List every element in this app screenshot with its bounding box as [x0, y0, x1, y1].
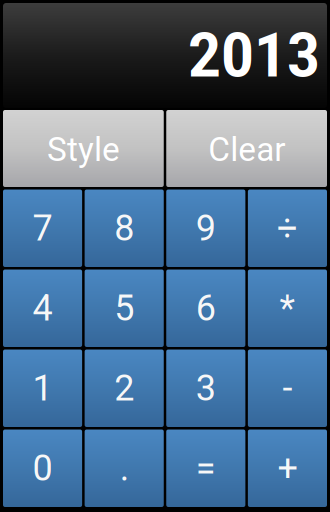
staticText: Clear — [208, 130, 285, 169]
button[interactable]: 8 — [85, 189, 164, 267]
staticText: 1 — [33, 367, 53, 409]
staticText: 3 — [196, 367, 216, 409]
staticText: ÷ — [277, 207, 298, 249]
button[interactable]: 2 — [85, 349, 164, 427]
staticText: 2 — [114, 367, 134, 409]
staticText: 0 — [33, 447, 53, 489]
staticText: = — [196, 447, 216, 489]
button[interactable]: * — [248, 269, 327, 347]
staticText: 6 — [196, 287, 216, 329]
button[interactable]: + — [248, 429, 327, 507]
button[interactable]: - — [248, 349, 327, 427]
button[interactable]: 9 — [166, 189, 245, 267]
button[interactable]: . — [85, 429, 164, 507]
staticText: 8 — [114, 207, 134, 249]
button[interactable]: = — [166, 429, 245, 507]
button[interactable]: 1 — [3, 349, 82, 427]
button[interactable]: 4 — [3, 269, 82, 347]
staticText: - — [282, 367, 292, 409]
staticText: . — [120, 447, 129, 489]
staticText: 4 — [33, 287, 53, 329]
staticText: * — [279, 287, 295, 329]
button[interactable]: Style — [3, 110, 164, 187]
staticText: 7 — [33, 207, 53, 249]
button[interactable]: ÷ — [248, 189, 327, 267]
button[interactable]: 7 — [3, 189, 82, 267]
staticText: 9 — [196, 207, 216, 249]
staticText: + — [277, 447, 297, 489]
button[interactable]: 3 — [166, 349, 245, 427]
staticText: 5 — [114, 287, 134, 329]
button[interactable]: 6 — [166, 269, 245, 347]
button[interactable]: 0 — [3, 429, 82, 507]
staticText: Style — [47, 130, 120, 169]
staticText: 2013 — [188, 20, 320, 91]
button[interactable]: Clear — [166, 110, 327, 187]
button[interactable]: 5 — [85, 269, 164, 347]
